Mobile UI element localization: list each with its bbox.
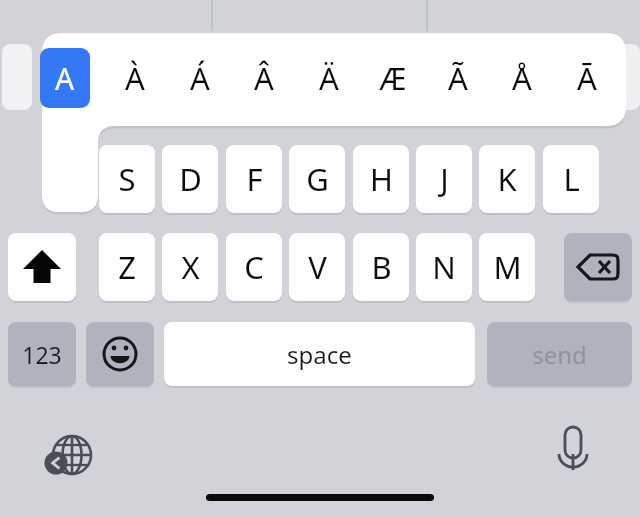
button[interactable]: J xyxy=(416,145,472,213)
button[interactable]: C xyxy=(226,233,282,301)
staticText: Z xyxy=(118,246,136,288)
button[interactable]: Delete xyxy=(564,233,632,301)
button[interactable]: Shift xyxy=(8,233,76,301)
button[interactable]: Ã xyxy=(427,46,489,110)
staticText: C xyxy=(244,246,264,288)
button[interactable]: Á xyxy=(169,46,231,110)
staticText: M xyxy=(493,246,522,288)
button[interactable]: G xyxy=(289,145,345,213)
button[interactable]: Ā xyxy=(556,46,618,110)
staticText: K xyxy=(497,158,517,200)
staticText: send xyxy=(532,338,587,371)
staticText: A xyxy=(55,58,75,99)
button[interactable]: N xyxy=(416,233,472,301)
button[interactable]: send xyxy=(487,322,632,386)
button[interactable]: X xyxy=(162,233,218,301)
staticText: Á xyxy=(190,57,210,99)
button[interactable]: S xyxy=(99,145,155,213)
staticText: V xyxy=(308,246,327,288)
staticText: J xyxy=(440,158,449,200)
staticText: F xyxy=(246,158,263,200)
staticText: Ā xyxy=(577,57,597,99)
staticText: 123 xyxy=(22,339,62,370)
button[interactable]: 123 xyxy=(8,322,76,386)
button[interactable]: D xyxy=(162,145,218,213)
button[interactable]: À xyxy=(104,46,166,110)
button[interactable]: Ä xyxy=(298,46,360,110)
button[interactable]: M xyxy=(479,233,535,301)
staticText: H xyxy=(370,158,393,200)
button[interactable]: Emoji xyxy=(86,322,154,386)
button[interactable]: Å xyxy=(491,46,553,110)
staticText: À xyxy=(125,57,145,99)
button[interactable]: V xyxy=(289,233,345,301)
staticText: Ã xyxy=(448,57,468,99)
button[interactable]: B xyxy=(353,233,409,301)
staticText: B xyxy=(371,246,392,288)
staticText: G xyxy=(306,158,329,200)
button[interactable]: K xyxy=(479,145,535,213)
button[interactable]: L xyxy=(543,145,599,213)
button[interactable]: Z xyxy=(99,233,155,301)
staticText: S xyxy=(118,158,136,200)
staticText: X xyxy=(181,246,200,288)
staticText: space xyxy=(287,338,352,371)
staticText: Å xyxy=(512,57,532,99)
staticText: N xyxy=(432,246,456,288)
button[interactable]: Æ xyxy=(362,46,424,110)
button[interactable]: A xyxy=(40,48,90,108)
button[interactable]: Switch keyboard xyxy=(40,428,98,486)
button[interactable]: H xyxy=(353,145,409,213)
staticText: Æ xyxy=(379,57,407,99)
staticText: Â xyxy=(254,57,274,99)
staticText: D xyxy=(179,158,202,200)
button[interactable]: space xyxy=(164,322,475,386)
staticText: Ä xyxy=(319,57,339,99)
button[interactable]: Â xyxy=(233,46,295,110)
button[interactable]: F xyxy=(226,145,282,213)
staticText: L xyxy=(563,158,580,200)
button[interactable]: Dictation xyxy=(548,422,598,478)
